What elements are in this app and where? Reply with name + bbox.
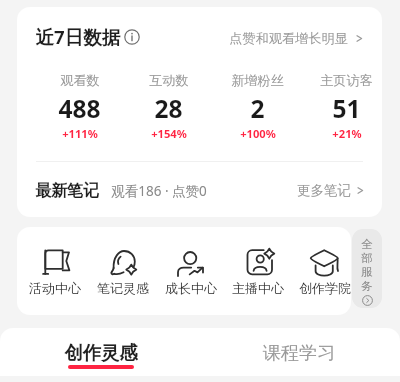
- staticText: 全 部 服 务: [361, 237, 373, 294]
- staticText: +111%: [62, 126, 98, 141]
- staticText: 新增粉丝: [231, 72, 284, 89]
- staticText: 最新笔记: [35, 181, 99, 201]
- staticText: 创作灵感: [64, 341, 138, 364]
- button[interactable]: 新增粉丝: [213, 72, 302, 141]
- staticText: 51: [332, 92, 361, 125]
- staticText: 更多笔记: [297, 182, 351, 199]
- button[interactable]: 全部服务: [352, 229, 382, 308]
- staticText: 28: [154, 92, 183, 125]
- staticText: 观看186 · 点赞0: [111, 182, 207, 200]
- staticText: 创作学院: [299, 280, 351, 296]
- button[interactable]: 活动中心: [21, 248, 89, 296]
- button[interactable]: 主播中心: [224, 248, 291, 296]
- button[interactable]: 笔记灵感: [89, 248, 157, 296]
- staticText: 2: [250, 92, 265, 125]
- staticText: 互动数: [149, 72, 189, 89]
- staticText: +100%: [240, 126, 276, 141]
- button[interactable]: 主页访客: [302, 72, 391, 141]
- staticText: 课程学习: [262, 341, 336, 364]
- button[interactable]: 创作灵感: [41, 328, 161, 376]
- button[interactable]: 互动数: [124, 72, 213, 141]
- staticText: 近7日数据: [35, 24, 121, 49]
- button[interactable]: 更多笔记: [297, 182, 364, 199]
- button[interactable]: 观看数: [35, 72, 124, 141]
- button[interactable]: 创作学院: [291, 248, 358, 296]
- staticText: 成长中心: [165, 280, 217, 296]
- staticText: 主页访客: [320, 72, 373, 89]
- button[interactable]: 成长中心: [157, 248, 224, 296]
- staticText: 观看数: [60, 72, 100, 89]
- staticText: +21%: [332, 126, 362, 141]
- button[interactable]: 点赞和观看增长明显: [229, 30, 363, 47]
- staticText: 488: [58, 92, 101, 125]
- button[interactable]: 课程学习: [239, 328, 359, 376]
- staticText: 主播中心: [232, 280, 284, 296]
- staticText: 点赞和观看增长明显: [229, 30, 348, 47]
- staticText: +154%: [151, 126, 187, 141]
- staticText: 活动中心: [29, 280, 81, 296]
- staticText: 笔记灵感: [97, 280, 149, 296]
